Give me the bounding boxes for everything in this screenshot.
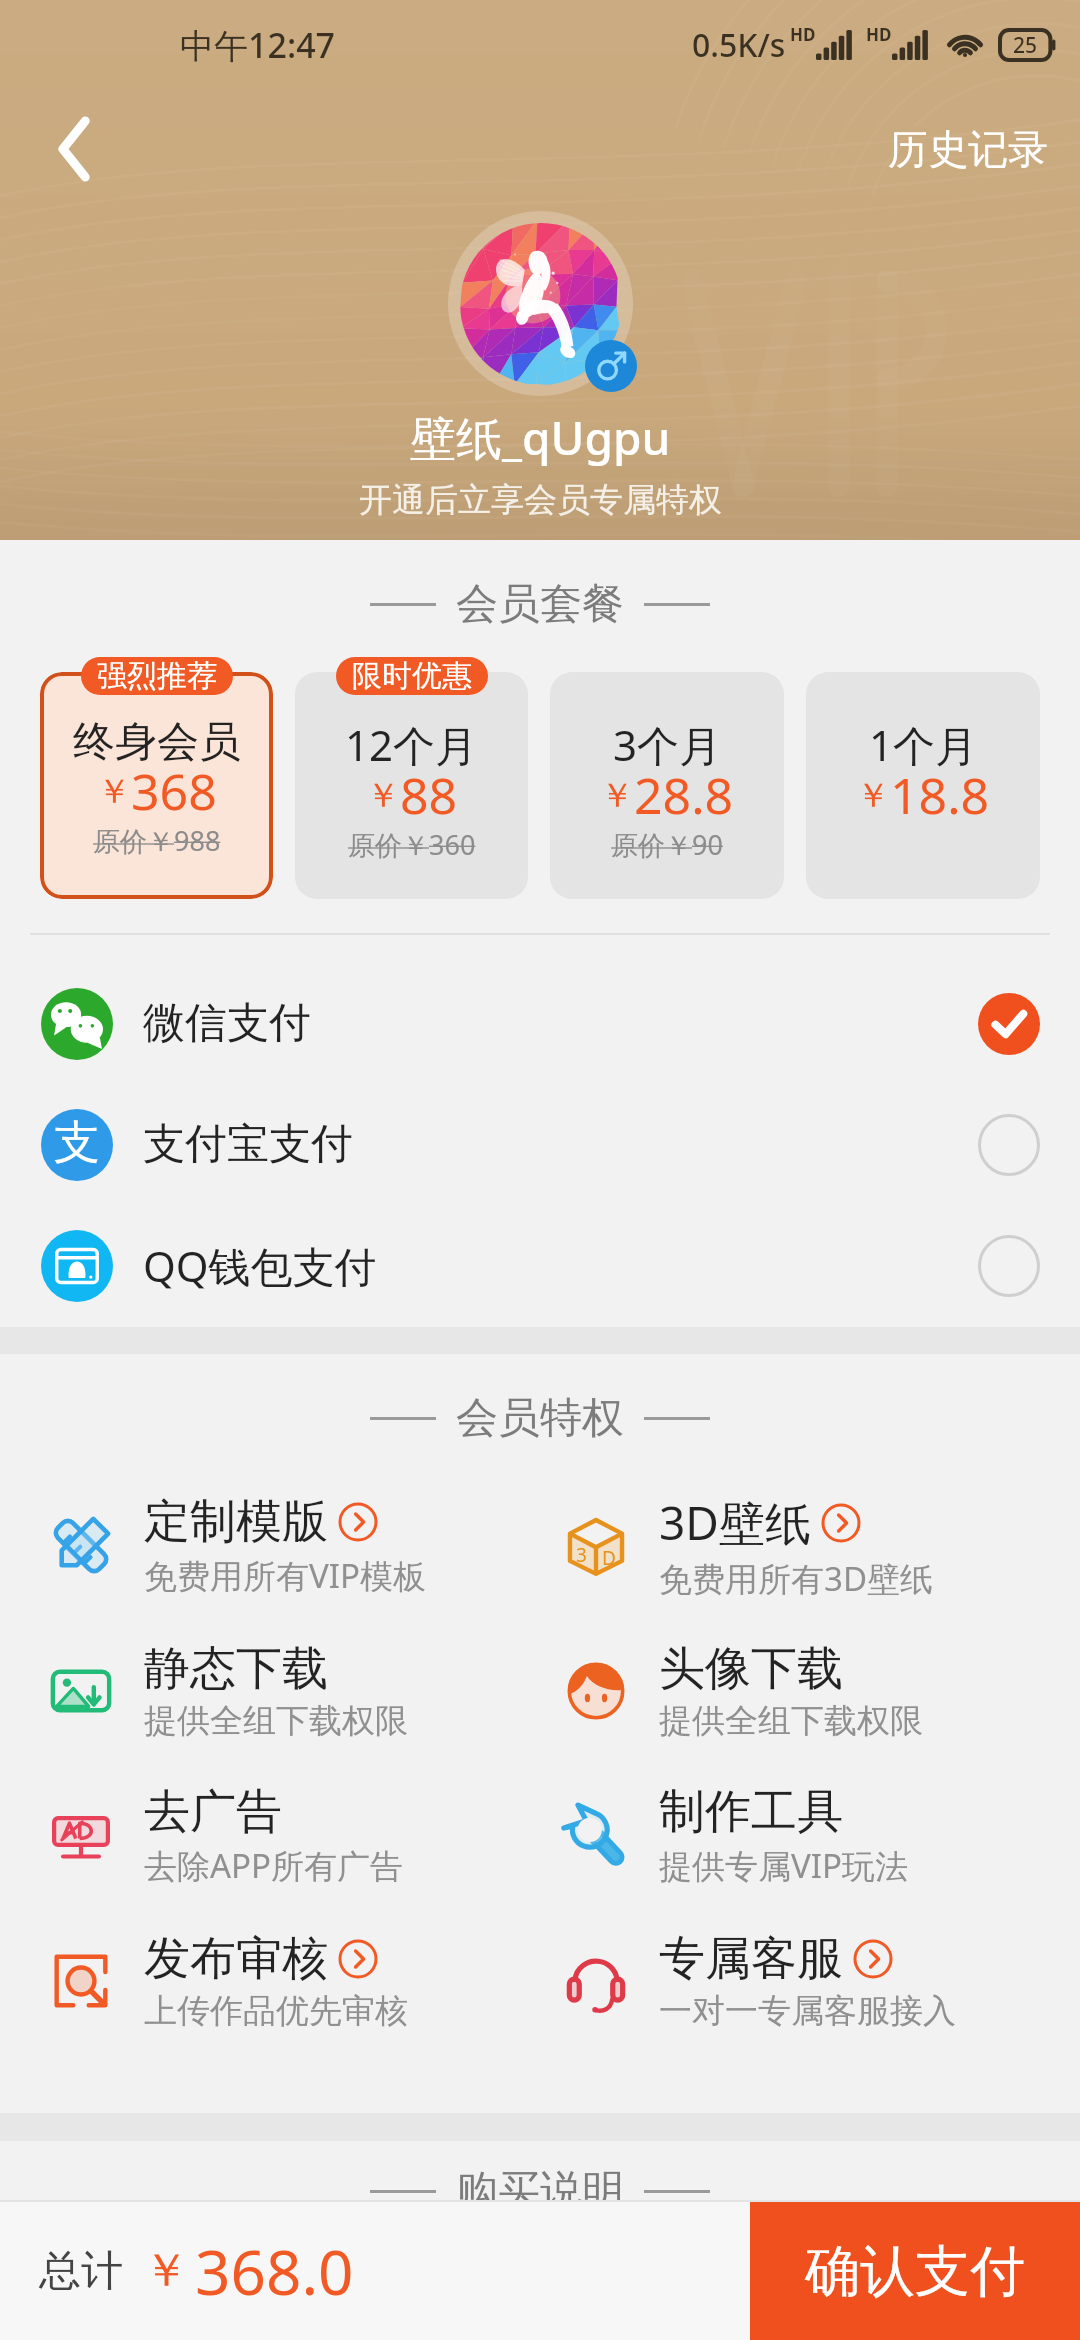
staticText: 历史记录 xyxy=(888,124,1048,174)
button[interactable]: 定制模版 xyxy=(48,1473,530,1618)
staticText: 微信支付 xyxy=(143,997,311,1050)
staticText: ￥ xyxy=(366,774,400,817)
staticText: 中午12:47 xyxy=(180,22,336,68)
staticText: 会员套餐 xyxy=(456,578,624,631)
button[interactable]: 发布审核 xyxy=(48,1908,530,2053)
button[interactable]: 去广告 xyxy=(48,1763,530,1908)
staticText: 原价￥988 xyxy=(93,822,221,859)
staticText: 确认支付 xyxy=(805,2237,1025,2306)
staticText: 发布审核 xyxy=(144,1930,328,1988)
staticText: 25 xyxy=(1013,31,1038,60)
staticText: 提供全组下载权限 xyxy=(659,1700,923,1742)
staticText: 12个月 xyxy=(345,716,478,773)
staticText: QQ钱包支付 xyxy=(143,1237,377,1294)
staticText: HD xyxy=(790,23,816,46)
staticText: 总计 xyxy=(39,2245,123,2298)
button[interactable]: 3 xyxy=(563,1473,1080,1618)
staticText: 强烈推荐 xyxy=(97,657,217,695)
staticText: ￥ xyxy=(143,2242,189,2300)
staticText: 头像下载 xyxy=(659,1640,843,1698)
staticText: 去除APP所有广告 xyxy=(144,1843,404,1888)
button[interactable]: 确认支付 xyxy=(750,2202,1080,2340)
staticText: D xyxy=(602,1545,616,1571)
staticText: 提供全组下载权限 xyxy=(144,1700,408,1742)
staticText: 支付宝支付 xyxy=(143,1118,353,1171)
button[interactable]: 1个月 xyxy=(806,672,1040,899)
staticText: ￥ xyxy=(856,774,890,817)
staticText: 限时优惠 xyxy=(352,657,472,695)
staticText: 368.0 xyxy=(195,2229,354,2313)
staticText: 18.8 xyxy=(890,761,990,829)
staticText: 支 xyxy=(54,1114,100,1172)
staticText: 静态下载 xyxy=(144,1640,328,1698)
button[interactable]: 12个月 xyxy=(295,672,528,899)
staticText: 免费用所有VIP模板 xyxy=(144,1553,426,1598)
staticText: 0.5K/s xyxy=(692,23,786,67)
button[interactable]: 微信支付 xyxy=(0,963,1080,1084)
staticText: 去广告 xyxy=(144,1783,282,1841)
button[interactable]: 制作工具 xyxy=(563,1763,1080,1908)
staticText: ￥ xyxy=(97,770,131,813)
staticText: 上传作品优先审核 xyxy=(144,1990,408,2032)
staticText: 一对一专属客服接入 xyxy=(659,1990,956,2032)
staticText: 制作工具 xyxy=(659,1783,843,1841)
staticText: 免费用所有3D壁纸 xyxy=(659,1556,933,1601)
staticText: 3D壁纸 xyxy=(659,1491,811,1554)
staticText: 专属客服 xyxy=(659,1930,843,1988)
button[interactable]: QQ钱包支付 xyxy=(0,1205,1080,1326)
staticText: 会员特权 xyxy=(456,1392,624,1445)
button[interactable]: 专属客服 xyxy=(563,1908,1080,2053)
button[interactable]: 终身会员 xyxy=(40,672,273,899)
staticText: 28.8 xyxy=(634,761,734,829)
staticText: 原价￥360 xyxy=(348,826,476,863)
staticText: ￥ xyxy=(600,774,634,817)
staticText: 原价￥90 xyxy=(611,826,723,863)
staticText: 开通后立享会员专属特权 xyxy=(359,479,722,521)
button[interactable]: Back xyxy=(0,90,150,208)
staticText: HD xyxy=(866,23,892,46)
staticText: 1个月 xyxy=(869,716,978,773)
button[interactable]: 历史记录 xyxy=(856,110,1080,188)
button[interactable]: 头像下载 xyxy=(563,1618,1080,1763)
button[interactable]: 静态下载 xyxy=(48,1618,530,1763)
button[interactable]: 3个月 xyxy=(550,672,784,899)
staticText: 3 xyxy=(576,1542,587,1568)
staticText: 88 xyxy=(400,761,458,829)
staticText: 提供专属VIP玩法 xyxy=(659,1843,908,1888)
staticText: 3个月 xyxy=(613,716,722,773)
button[interactable]: 支 xyxy=(0,1084,1080,1205)
staticText: 定制模版 xyxy=(144,1493,328,1551)
staticText: 终身会员 xyxy=(73,716,241,769)
staticText: 壁纸_qUgpu xyxy=(410,406,671,469)
staticText: 购买说明 xyxy=(456,2165,624,2218)
staticText: 368 xyxy=(131,757,217,825)
